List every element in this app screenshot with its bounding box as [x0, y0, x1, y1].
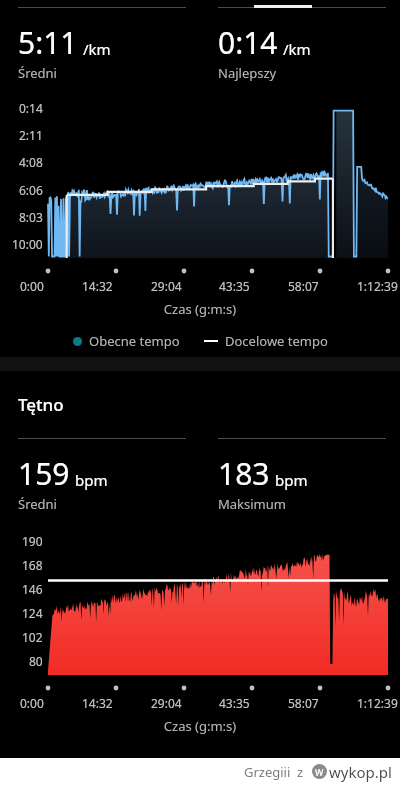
staticText: 0:14 [19, 100, 43, 116]
staticText: 5:11 [18, 22, 78, 63]
staticText: /km [283, 39, 311, 59]
staticText: 14:32 [82, 695, 113, 711]
staticText: Średni [18, 495, 57, 513]
staticText: 124 [22, 605, 43, 621]
button[interactable]: 5:11 [0, 5, 200, 82]
other: Wykop logo [312, 764, 327, 779]
staticText: 1:12:39 [357, 278, 398, 294]
staticText: Czas (g:m:s) [0, 717, 400, 735]
staticText: 146 [22, 581, 43, 597]
staticText: Średni [18, 64, 57, 82]
staticText: Czas (g:m:s) [0, 300, 400, 318]
staticText: /km [83, 39, 111, 59]
button[interactable]: 159 [0, 436, 200, 513]
staticText: 58:07 [288, 278, 319, 294]
staticText: 10:00 [12, 236, 43, 252]
button[interactable]: Obecne tempo [73, 332, 180, 350]
staticText: Grzegiii z [244, 763, 304, 781]
staticText: bpm [275, 470, 308, 490]
staticText: 29:04 [151, 695, 182, 711]
staticText: 43:35 [219, 278, 250, 294]
staticText: 0:00 [20, 695, 44, 711]
staticText: 29:04 [151, 278, 182, 294]
staticText: wykop.pl [329, 762, 392, 782]
button[interactable]: Docelowe tempo [204, 332, 328, 350]
staticText: Tętno [18, 393, 64, 416]
staticText: 168 [22, 557, 43, 573]
staticText: 43:35 [219, 695, 250, 711]
staticText: 0:00 [20, 278, 44, 294]
staticText: 159 [18, 453, 70, 494]
button[interactable]: 183 [200, 436, 400, 513]
staticText: Maksimum [218, 495, 286, 513]
staticText: 1:12:39 [357, 695, 398, 711]
staticText: W [315, 766, 324, 778]
staticText: 0:14 [218, 22, 278, 63]
staticText: 183 [218, 453, 270, 494]
staticText: Obecne tempo [89, 332, 180, 350]
staticText: 4:08 [19, 154, 43, 170]
button[interactable]: 0:14 [200, 5, 400, 82]
staticText: bpm [75, 470, 108, 490]
staticText: Najlepszy [218, 64, 277, 82]
staticText: 80 [29, 653, 43, 669]
staticText: Docelowe tempo [225, 332, 328, 350]
staticText: 8:03 [19, 209, 43, 225]
staticText: 2:11 [19, 127, 43, 143]
staticText: 58:07 [288, 695, 319, 711]
staticText: 14:32 [82, 278, 113, 294]
staticText: 6:06 [19, 182, 43, 198]
staticText: 190 [22, 533, 43, 549]
staticText: 102 [22, 629, 43, 645]
